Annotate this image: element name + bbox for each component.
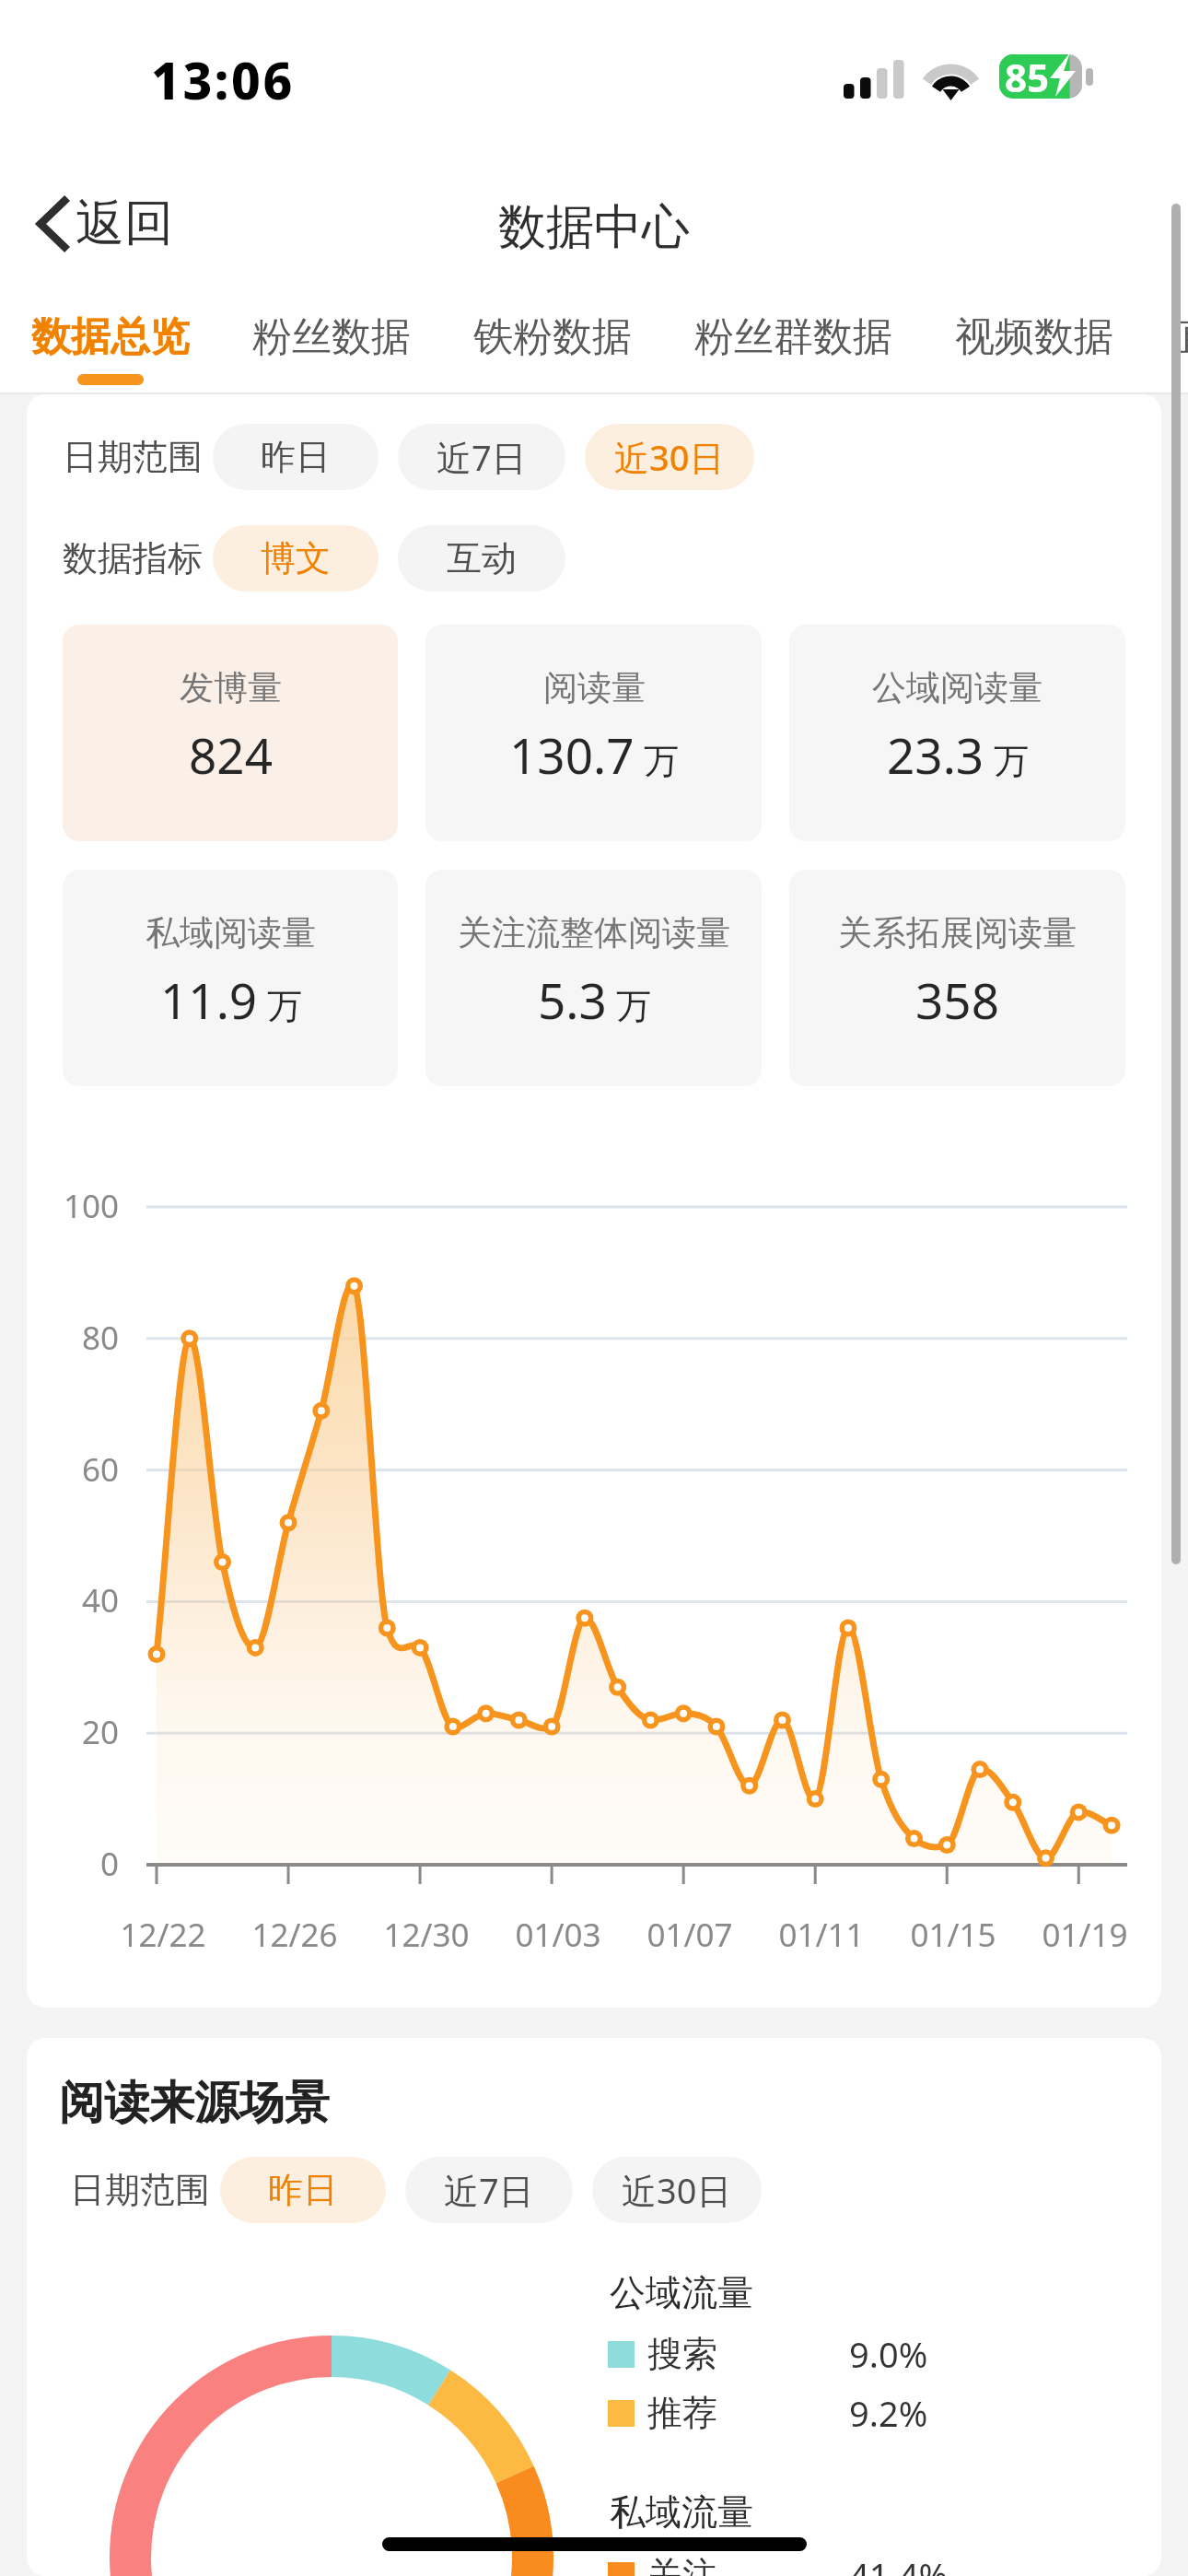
staticText: 关注流整体阅读量 [458, 911, 730, 954]
staticText: 万 [644, 739, 679, 783]
staticText: 昨日 [261, 435, 331, 479]
staticText: 近7日 [444, 2166, 534, 2214]
staticText: 130.7 [509, 721, 635, 788]
staticText: 铁粉数据 [473, 312, 632, 362]
button[interactable]: 关系拓展阅读量 [789, 870, 1125, 1086]
staticText: 40 [27, 1578, 119, 1622]
staticText: 9.0% [849, 2330, 928, 2378]
button[interactable]: 昨日 [220, 2157, 386, 2223]
staticText: 数据指标 [63, 536, 203, 580]
staticText: 12/30 [334, 1913, 518, 1957]
staticText: 01/19 [993, 1913, 1161, 1957]
staticText: 100 [27, 1184, 119, 1228]
staticText: 私域阅读量 [146, 911, 316, 954]
staticText: 阅读量 [543, 666, 646, 709]
button[interactable]: 数据总览 [31, 290, 190, 394]
staticText: 返回 [76, 193, 173, 254]
button[interactable]: 粉丝数据 [252, 290, 411, 394]
staticText: 358 [915, 966, 999, 1033]
staticText: 01/03 [466, 1913, 650, 1957]
staticText: 粉丝数据 [252, 312, 411, 362]
staticText: 公域阅读量 [872, 666, 1042, 709]
staticText: 41.4% [849, 2551, 948, 2576]
staticText: 关注 [647, 2553, 717, 2576]
staticText: 20 [27, 1710, 119, 1754]
button[interactable]: 博文 [213, 525, 379, 591]
staticText: 日期范围 [70, 2168, 210, 2212]
staticText: 互动 [447, 536, 517, 580]
button[interactable]: 公域阅读量 [789, 625, 1125, 841]
staticText: 11.9 [160, 966, 258, 1033]
staticText: 私域流量 [610, 2489, 753, 2535]
staticText: 推荐 [647, 2391, 717, 2435]
staticText: 近30日 [614, 433, 725, 481]
button[interactable]: Back [0, 157, 195, 290]
staticText: 数据总览 [31, 312, 190, 362]
staticText: 近30日 [622, 2166, 732, 2214]
staticText: 近7日 [437, 433, 527, 481]
staticText: 9.2% [849, 2389, 928, 2437]
staticText: 5.3 [538, 966, 607, 1033]
staticText: 万 [616, 984, 651, 1028]
button[interactable]: 推荐 [608, 2389, 928, 2437]
button[interactable]: 近30日 [592, 2157, 762, 2223]
button[interactable]: 粉丝群数据 [694, 290, 892, 394]
staticText: 01/11 [729, 1913, 914, 1957]
button[interactable]: 近7日 [398, 424, 565, 490]
staticText: 万 [267, 984, 302, 1028]
other: Back [37, 197, 68, 251]
button[interactable]: 私域阅读量 [63, 870, 398, 1086]
staticText: 昨日 [268, 2168, 338, 2212]
staticText: 关系拓展阅读量 [838, 911, 1077, 954]
staticText: 粉丝群数据 [694, 312, 892, 362]
staticText: 数据中心 [498, 197, 690, 258]
button[interactable]: 搜索 [608, 2330, 928, 2378]
staticText: 公域流量 [610, 2270, 753, 2315]
button[interactable]: 铁粉数据 [473, 290, 632, 394]
staticText: 12/26 [203, 1913, 387, 1957]
staticText: 80 [27, 1316, 119, 1360]
staticText: 搜索 [647, 2332, 717, 2376]
staticText: 博文 [261, 536, 331, 580]
button[interactable]: 近7日 [405, 2157, 573, 2223]
staticText: 阅读来源场景 [59, 2075, 330, 2132]
button[interactable]: 关注 [608, 2551, 948, 2576]
staticText: 日期范围 [63, 435, 203, 479]
staticText: 01/15 [861, 1913, 1045, 1957]
staticText: 发博量 [180, 666, 282, 709]
staticText: 直 [1176, 312, 1188, 362]
button[interactable]: 视频数据 [955, 290, 1113, 394]
staticText: 85 [1005, 51, 1050, 103]
button[interactable]: 互动 [398, 525, 565, 591]
staticText: 12/22 [71, 1913, 255, 1957]
staticText: 60 [27, 1447, 119, 1492]
button[interactable]: 直 [1176, 290, 1188, 394]
button[interactable]: 关注流整体阅读量 [425, 870, 762, 1086]
staticText: 0 [27, 1842, 119, 1886]
staticText: 824 [189, 721, 273, 788]
button[interactable]: 发博量 [63, 625, 398, 841]
button[interactable]: 阅读量 [425, 625, 762, 841]
staticText: 13:06 [151, 45, 295, 114]
staticText: 万 [994, 739, 1029, 783]
button[interactable]: 昨日 [213, 424, 379, 490]
staticText: 视频数据 [955, 312, 1113, 362]
staticText: 01/07 [598, 1913, 782, 1957]
button[interactable]: 近30日 [585, 424, 754, 490]
staticText: 23.3 [887, 721, 984, 788]
